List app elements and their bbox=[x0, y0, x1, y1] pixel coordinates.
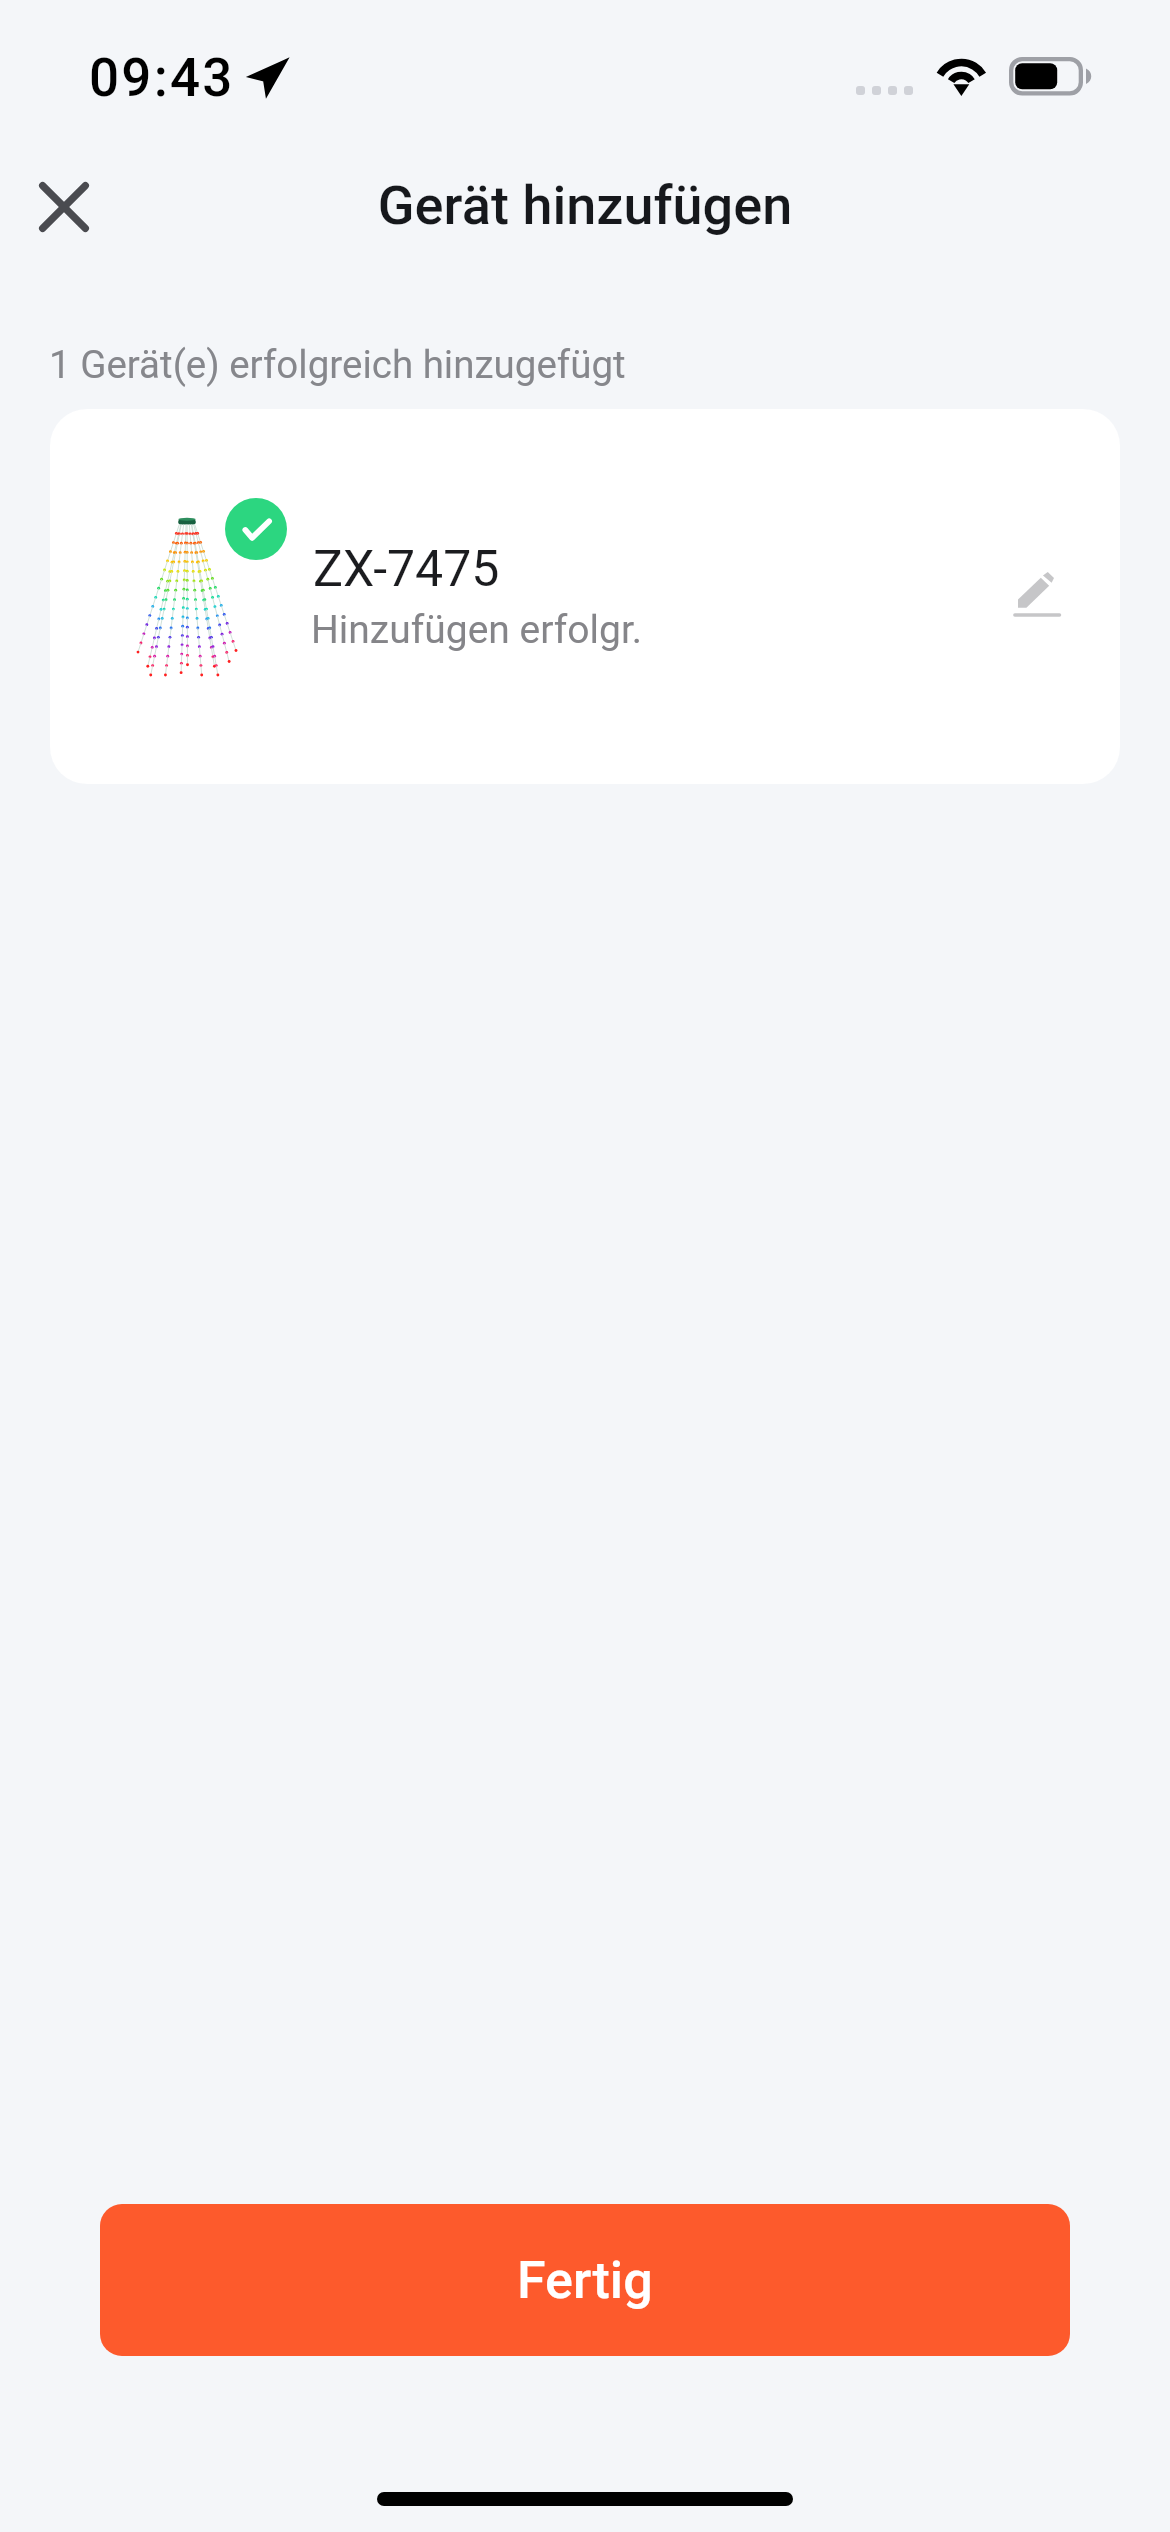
staticText: 09:43 bbox=[89, 47, 235, 109]
button[interactable]: Close bbox=[17, 160, 111, 254]
button[interactable]: Fertig bbox=[100, 2204, 1070, 2356]
button[interactable]: ZX-7475 bbox=[50, 409, 1120, 784]
staticText: Hinzufügen erfolgr. bbox=[311, 607, 643, 653]
staticText: Fertig bbox=[517, 2250, 653, 2311]
staticText: 1 Gerät(e) erfolgreich hinzugefügt bbox=[49, 342, 626, 387]
staticText: ZX-7475 bbox=[313, 540, 500, 599]
button[interactable]: Rename device bbox=[976, 535, 1096, 655]
staticText: Gerät hinzufügen bbox=[0, 174, 1170, 237]
